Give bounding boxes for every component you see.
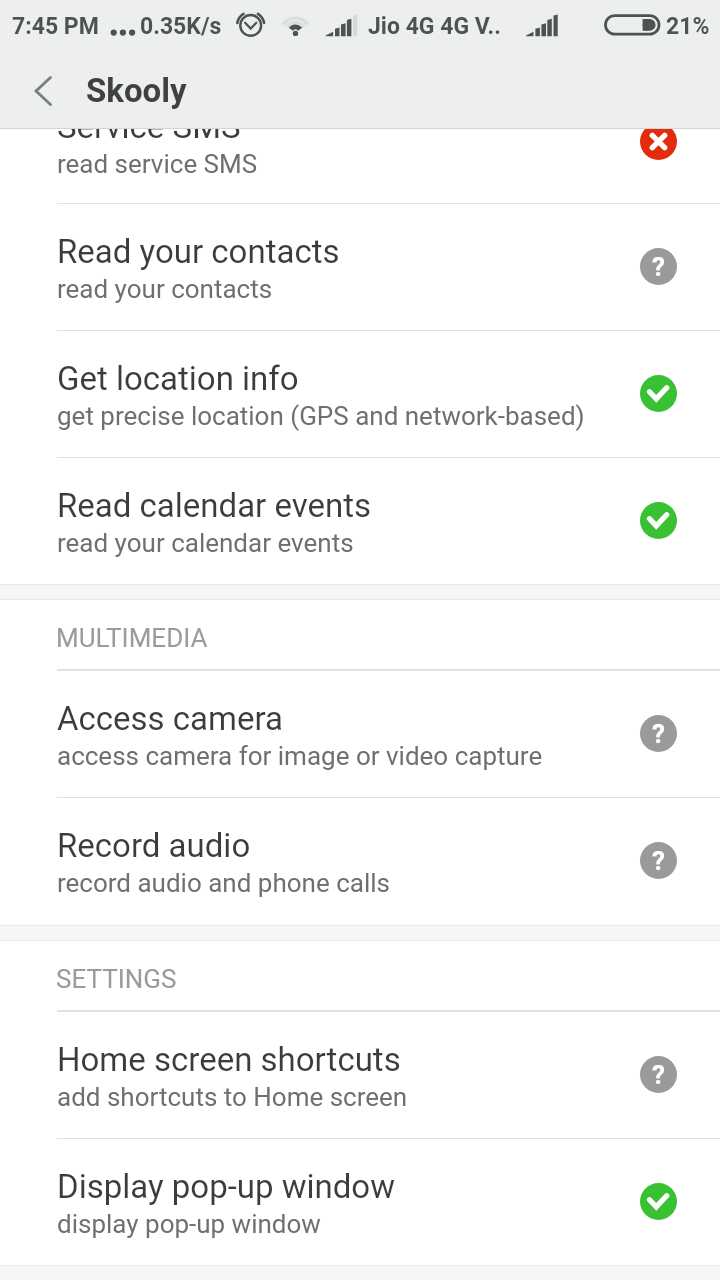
button[interactable]: Home screen shortcuts — [0, 1011, 720, 1138]
staticText: Record audio — [57, 826, 251, 865]
staticText: SETTINGS — [56, 964, 177, 994]
staticText: Jio 4G 4G V.. — [368, 13, 501, 40]
staticText: read service SMS — [57, 149, 258, 179]
staticText: 21% — [666, 13, 710, 40]
button[interactable]: Access camera — [0, 670, 720, 797]
button[interactable]: Read your contacts — [0, 203, 720, 330]
staticText: Home screen shortcuts — [57, 1040, 401, 1079]
staticText: Read your contacts — [57, 232, 340, 271]
staticText: record audio and phone calls — [57, 868, 390, 898]
staticText: ? — [652, 1060, 665, 1090]
button[interactable]: Display pop-up window — [0, 1138, 720, 1265]
staticText: Display pop-up window — [57, 1167, 395, 1206]
staticText: MULTIMEDIA — [56, 623, 208, 653]
button[interactable]: Get location info — [0, 330, 720, 457]
staticText: Get location info — [57, 359, 299, 398]
staticText: add shortcuts to Home screen — [57, 1082, 408, 1112]
staticText: Access camera — [57, 699, 283, 738]
staticText: Service SMS — [57, 107, 241, 146]
staticText: read your calendar events — [57, 528, 354, 558]
staticText: ? — [652, 846, 665, 876]
staticText: Skooly — [86, 71, 187, 110]
staticText: display pop-up window — [57, 1209, 321, 1239]
button[interactable]: Back — [10, 60, 76, 129]
staticText: Read calendar events — [57, 486, 372, 525]
button[interactable]: Service SMS — [0, 78, 720, 205]
staticText: ? — [652, 252, 665, 282]
staticText: read your contacts — [57, 274, 273, 304]
staticText: 7:45 PM — [12, 13, 99, 40]
staticText: ? — [652, 719, 665, 749]
staticText: get precise location (GPS and network-ba… — [57, 401, 585, 431]
button[interactable]: Read calendar events — [0, 457, 720, 584]
staticText: 0.35K/s — [140, 13, 222, 40]
staticText: access camera for image or video capture — [57, 741, 543, 771]
button[interactable]: Record audio — [0, 797, 720, 924]
